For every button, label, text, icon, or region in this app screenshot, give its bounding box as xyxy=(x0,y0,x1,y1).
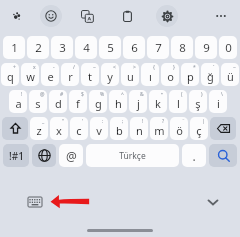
button[interactable]: $ xyxy=(69,90,87,113)
staticText: o xyxy=(167,69,174,84)
staticText: ı xyxy=(149,69,152,84)
button[interactable]: 2 xyxy=(27,36,49,59)
button[interactable]: Backspace xyxy=(210,117,236,140)
button[interactable]: ^ xyxy=(109,90,127,113)
button[interactable]: x xyxy=(21,63,39,86)
button[interactable]: More options xyxy=(210,5,232,27)
button[interactable]: Change language xyxy=(32,144,56,167)
staticText: 4 xyxy=(83,40,90,56)
button[interactable]: ' xyxy=(70,117,88,140)
button[interactable]: ~ xyxy=(221,63,239,86)
button[interactable]: • xyxy=(149,90,167,113)
staticText: • xyxy=(161,91,163,98)
button[interactable]: Türkçe xyxy=(86,144,179,167)
staticText: x xyxy=(33,64,36,71)
button[interactable]: 3 xyxy=(51,36,73,59)
button[interactable]: * xyxy=(181,63,199,86)
button[interactable]: ( xyxy=(169,90,187,113)
staticText: ~ xyxy=(233,64,236,71)
button[interactable]: ! xyxy=(130,117,148,140)
button[interactable]: / xyxy=(61,63,79,86)
button[interactable]: - xyxy=(41,63,59,86)
button[interactable]: # xyxy=(49,90,67,113)
button[interactable]: Emoji xyxy=(40,5,62,27)
button[interactable]: . xyxy=(182,144,206,167)
button[interactable]: | xyxy=(190,117,208,140)
staticText: ! xyxy=(21,91,23,98)
staticText: f xyxy=(76,96,80,111)
button[interactable]: 7 xyxy=(147,36,169,59)
staticText: > xyxy=(133,64,136,71)
button[interactable]: > xyxy=(121,63,139,86)
button[interactable]: ; xyxy=(110,117,128,140)
button[interactable]: 8 xyxy=(171,36,193,59)
button[interactable]: Hide keyboard xyxy=(202,191,224,213)
staticText: h xyxy=(115,96,122,111)
button[interactable]: @ xyxy=(29,90,47,113)
staticText: ^ xyxy=(121,91,124,98)
button[interactable]: Search xyxy=(209,144,237,167)
staticText: % xyxy=(100,91,105,98)
button[interactable]: Settings xyxy=(156,5,178,27)
staticText: $ xyxy=(81,91,84,98)
staticText: ~ xyxy=(93,64,96,71)
staticText: j xyxy=(137,96,140,111)
button[interactable]: ? xyxy=(150,117,168,140)
staticText: < xyxy=(113,64,116,71)
staticText: ( xyxy=(181,91,183,98)
staticText: @ xyxy=(66,148,77,164)
staticText: 5 xyxy=(107,40,114,56)
button[interactable]: _ xyxy=(30,117,48,140)
button[interactable]: { xyxy=(141,63,159,86)
staticText: / xyxy=(73,64,75,71)
button[interactable]: 1 xyxy=(3,36,25,59)
staticText: v xyxy=(96,123,102,138)
button[interactable]: < xyxy=(101,63,119,86)
staticText: @ xyxy=(40,91,45,98)
staticText: d xyxy=(55,96,62,111)
button[interactable]: 6 xyxy=(123,36,145,59)
staticText: } xyxy=(173,64,175,71)
staticText: * xyxy=(193,64,196,71)
button[interactable]: ` xyxy=(201,63,219,86)
staticText: : xyxy=(102,118,104,125)
staticText: x xyxy=(56,123,62,138)
staticText: ¨ xyxy=(182,118,185,125)
staticText: - xyxy=(53,64,55,71)
staticText: a xyxy=(15,96,22,111)
staticText: c xyxy=(76,123,82,138)
button[interactable]: ~ xyxy=(81,63,99,86)
staticText: Türkçe xyxy=(119,150,146,162)
button[interactable]: % xyxy=(89,90,107,113)
button[interactable]: " xyxy=(50,117,68,140)
button[interactable]: ! xyxy=(9,90,27,113)
button[interactable]: @ xyxy=(59,144,83,167)
staticText: # xyxy=(60,91,64,98)
button[interactable]: ¨ xyxy=(170,117,188,140)
button[interactable]: : xyxy=(90,117,108,140)
button[interactable]: Shift xyxy=(2,117,28,140)
button[interactable]: ) xyxy=(189,90,207,113)
button[interactable]: \ xyxy=(209,90,227,113)
button[interactable]: !#1 xyxy=(3,144,29,167)
staticText: ` xyxy=(213,64,215,71)
button[interactable]: 0 xyxy=(219,36,237,59)
button[interactable]: Clipboard xyxy=(116,5,138,27)
button[interactable]: & xyxy=(129,90,147,113)
button[interactable]: Translate xyxy=(76,5,98,27)
staticText: q xyxy=(7,69,14,84)
button[interactable]: 4 xyxy=(75,36,97,59)
button[interactable]: } xyxy=(161,63,179,86)
staticText: p xyxy=(187,69,194,84)
button[interactable]: Gboard xyxy=(6,5,28,27)
button[interactable]: 5 xyxy=(99,36,121,59)
button[interactable]: Switch keyboard xyxy=(24,191,46,213)
staticText: ; xyxy=(122,118,124,125)
staticText: g xyxy=(95,96,102,111)
staticText: k xyxy=(155,96,161,111)
button[interactable]: 9 xyxy=(195,36,217,59)
staticText: e xyxy=(47,69,54,84)
button[interactable]: + xyxy=(1,63,19,86)
staticText: 0 xyxy=(225,40,232,56)
staticText: y xyxy=(107,69,113,84)
